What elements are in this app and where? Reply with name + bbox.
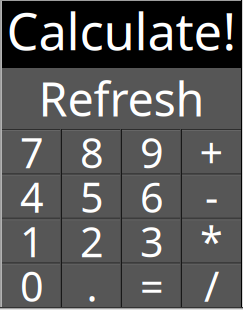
- staticText: +: [199, 124, 223, 180]
- staticText: Calculate!: [6, 0, 236, 65]
- button[interactable]: +: [182, 129, 241, 173]
- staticText: 3: [140, 213, 164, 269]
- button[interactable]: /: [182, 262, 241, 307]
- staticText: 1: [20, 213, 44, 269]
- staticText: =: [140, 258, 164, 310]
- button[interactable]: 2: [62, 218, 122, 262]
- button[interactable]: 3: [122, 218, 182, 262]
- staticText: -: [205, 169, 218, 225]
- button[interactable]: 9: [122, 129, 182, 173]
- button[interactable]: -: [182, 173, 241, 218]
- button[interactable]: .: [62, 262, 122, 307]
- button[interactable]: 0: [2, 262, 62, 307]
- staticText: *: [200, 213, 223, 269]
- button[interactable]: 7: [2, 129, 62, 173]
- staticText: 7: [20, 124, 44, 180]
- staticText: 8: [80, 124, 104, 180]
- staticText: .: [86, 258, 97, 310]
- staticText: 2: [80, 213, 104, 269]
- button[interactable]: Refresh: [2, 68, 241, 129]
- button[interactable]: *: [182, 218, 241, 262]
- button[interactable]: 6: [122, 173, 182, 218]
- button[interactable]: 5: [62, 173, 122, 218]
- button[interactable]: 4: [2, 173, 62, 218]
- button[interactable]: 1: [2, 218, 62, 262]
- staticText: 9: [140, 124, 164, 180]
- staticText: Refresh: [38, 67, 204, 130]
- button[interactable]: =: [122, 262, 182, 307]
- staticText: 6: [140, 169, 164, 225]
- staticText: 4: [20, 169, 44, 225]
- button[interactable]: 8: [62, 129, 122, 173]
- staticText: 5: [80, 169, 104, 225]
- staticText: /: [204, 258, 219, 310]
- staticText: 0: [20, 258, 44, 310]
